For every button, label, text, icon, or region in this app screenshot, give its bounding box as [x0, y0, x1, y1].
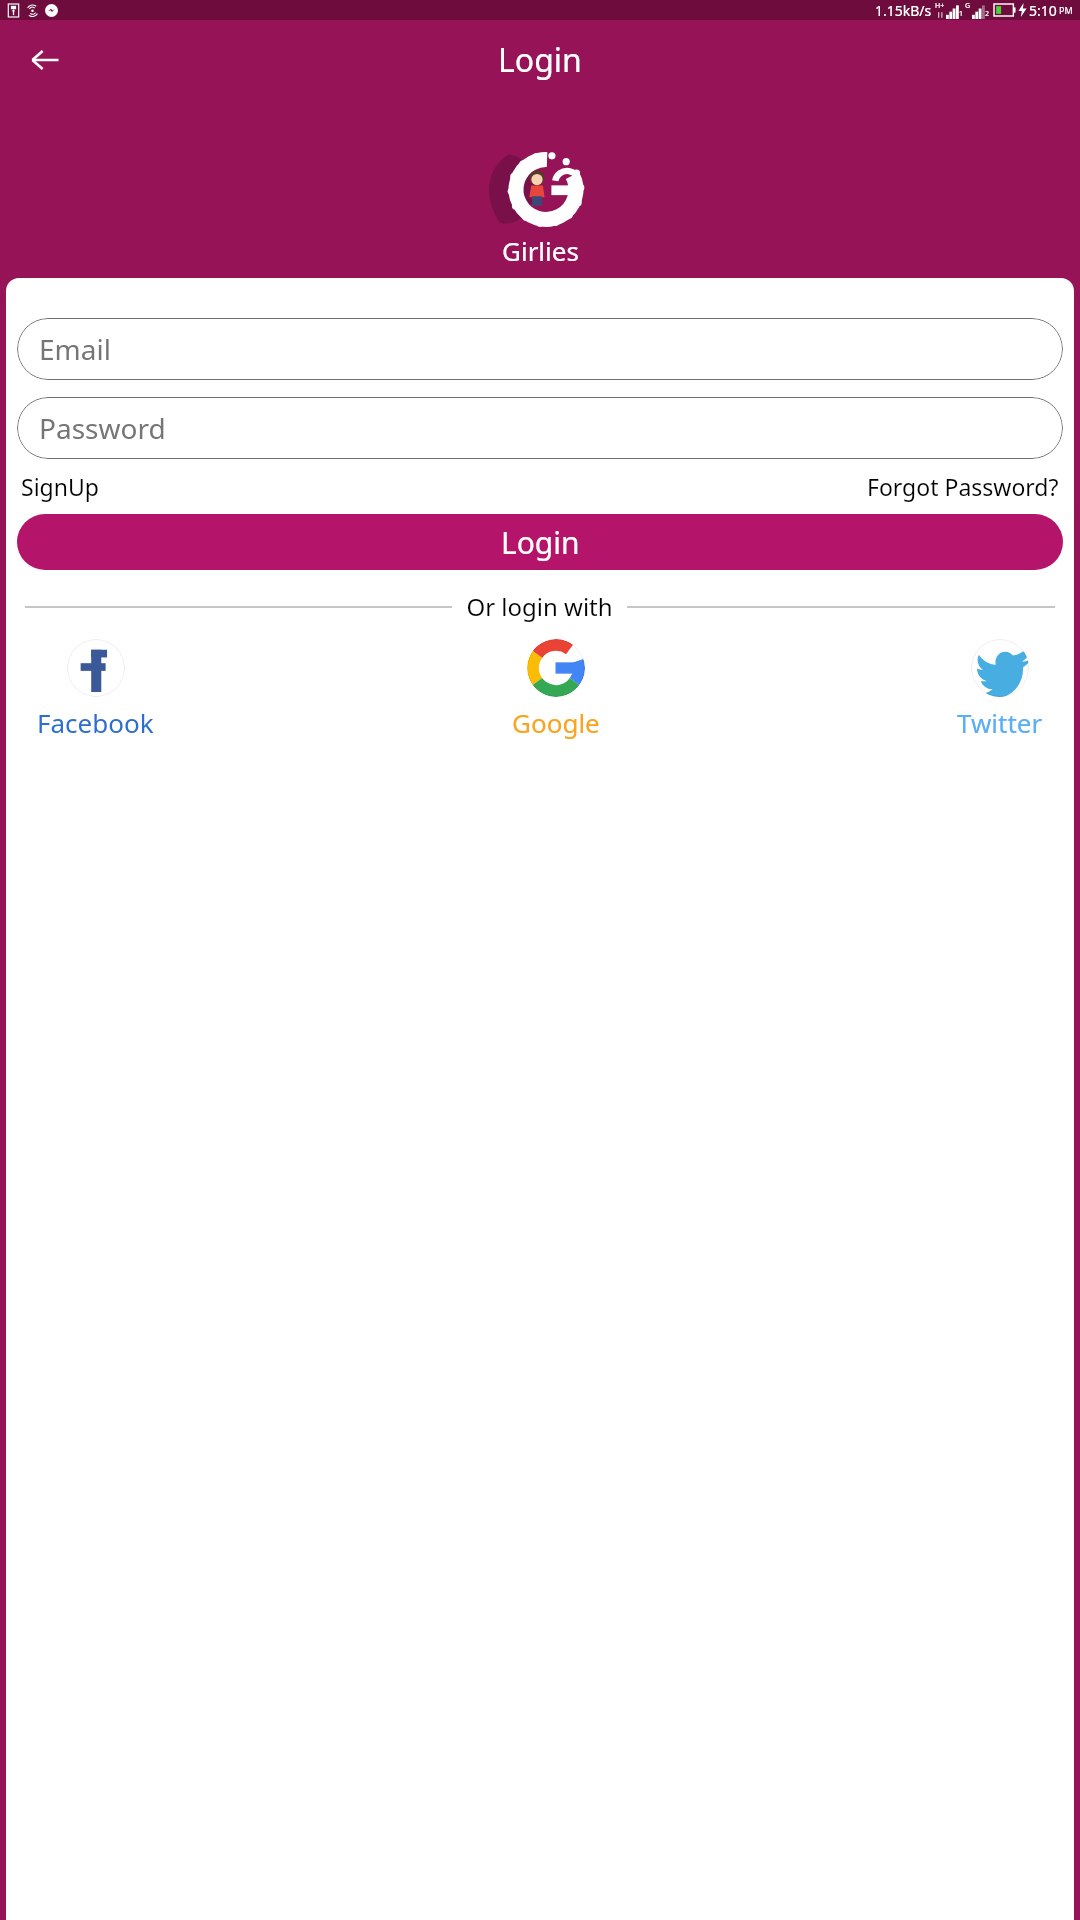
button[interactable]: Twitter	[951, 637, 1049, 742]
staticText: SignUp	[21, 471, 99, 502]
button[interactable]: Back	[22, 37, 68, 83]
staticText: Twitter	[957, 705, 1043, 740]
button[interactable]: Google	[506, 637, 606, 742]
button[interactable]: SignUp	[17, 467, 103, 506]
button[interactable]: Login	[17, 514, 1063, 570]
staticText: Email	[39, 330, 111, 368]
staticText: Forgot Password?	[867, 471, 1059, 502]
staticText: Login	[498, 38, 582, 82]
staticText: Or login with	[466, 590, 613, 623]
staticText: PM	[1059, 4, 1073, 16]
staticText: 5:10	[1029, 1, 1057, 20]
staticText: 2	[985, 9, 990, 19]
staticText: G	[965, 1, 971, 11]
staticText: Facebook	[37, 705, 154, 740]
staticText: Girlies	[502, 233, 579, 268]
staticText: 1.15kB/s	[875, 1, 932, 20]
button[interactable]: Password	[17, 397, 1063, 459]
staticText: Password	[39, 409, 166, 447]
button[interactable]: Email	[17, 318, 1063, 380]
staticText: 1	[959, 9, 964, 19]
button[interactable]: Forgot Password?	[863, 467, 1063, 506]
button[interactable]: Facebook	[31, 637, 160, 742]
staticText: Google	[512, 705, 600, 740]
staticText: Login	[501, 522, 580, 563]
staticText: H+	[935, 1, 945, 11]
